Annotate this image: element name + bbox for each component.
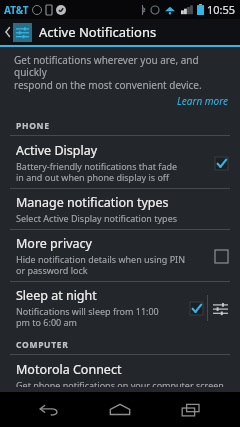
button[interactable]: Manage notification types: [0, 189, 240, 229]
staticText: AT&T: [4, 3, 29, 17]
button[interactable]: Sleep at night: [0, 282, 240, 333]
button[interactable]: Motorola Connect: [0, 356, 240, 392]
button[interactable]: Navigate up: [0, 19, 240, 45]
staticText: Get phone notifications on your computer…: [16, 379, 224, 387]
button[interactable]: Active Display: [0, 137, 240, 188]
staticText: More privacy: [16, 235, 92, 252]
button[interactable]: Enabled checkbox: [210, 152, 232, 174]
button[interactable]: Home: [98, 392, 142, 427]
staticText: Motorola Connect: [16, 361, 122, 378]
staticText: COMPUTER: [16, 339, 69, 351]
staticText: Select Active Display notification types: [16, 212, 178, 224]
button[interactable]: Recent apps: [169, 392, 213, 427]
button[interactable]: Enabled checkbox: [185, 297, 207, 319]
staticText: Hide notification details when using PIN…: [16, 253, 186, 276]
button[interactable]: Back: [27, 392, 71, 427]
staticText: Battery-friendly notifications that fade…: [16, 160, 178, 183]
staticText: PHONE: [16, 120, 50, 132]
staticText: Active Display: [16, 142, 98, 159]
staticText: Manage notification types: [16, 194, 169, 211]
staticText: 10:55: [207, 2, 236, 17]
button[interactable]: Learn more: [177, 94, 228, 108]
staticText: Learn more: [177, 94, 228, 108]
staticText: Active Notifications: [39, 23, 157, 41]
button[interactable]: Sleep schedule settings: [208, 296, 232, 320]
staticText: Get notifications wherever you are, and …: [14, 53, 228, 92]
staticText: Sleep at night: [16, 287, 97, 304]
staticText: Notifications will sleep from 11:00 pm t…: [16, 305, 159, 328]
button[interactable]: Disabled checkbox: [210, 245, 232, 267]
button[interactable]: More privacy: [0, 230, 240, 281]
